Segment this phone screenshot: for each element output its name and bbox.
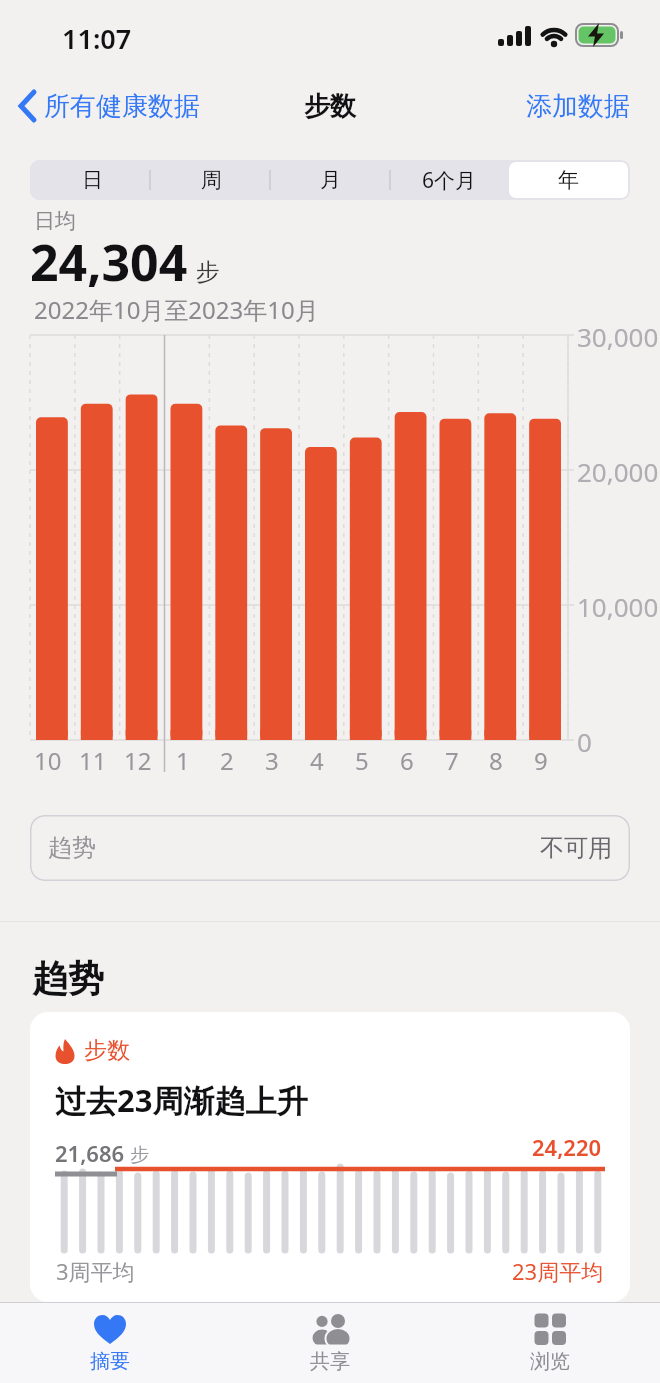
button[interactable]: 年	[509, 162, 628, 198]
staticText: 30,000	[577, 319, 659, 354]
staticText: 日	[82, 167, 103, 193]
staticText: 过去23周渐趋上升	[55, 1079, 308, 1121]
button[interactable]: 6个月	[390, 162, 509, 198]
staticText: 不可用	[540, 833, 612, 863]
staticText: 所有健康数据	[44, 90, 200, 123]
staticText: 12	[124, 744, 152, 777]
staticText: 步	[130, 1143, 149, 1167]
button[interactable]: 添加数据	[526, 90, 630, 123]
staticText: 10,000	[577, 589, 659, 624]
staticText: 1	[176, 744, 190, 777]
staticText: 8	[489, 744, 503, 777]
staticText: 6	[400, 744, 414, 777]
staticText: 21,686	[55, 1138, 125, 1168]
staticText: 2	[220, 744, 234, 777]
staticText: 11	[79, 744, 107, 777]
staticText: 23周平均	[512, 1256, 604, 1286]
staticText: 步数	[84, 1036, 130, 1065]
staticText: 共享	[310, 1349, 350, 1374]
staticText: 24,220	[532, 1132, 602, 1162]
staticText: 日均	[34, 208, 76, 234]
button[interactable]: 摘要	[0, 1303, 220, 1383]
staticText: 6个月	[422, 166, 477, 195]
staticText: 3周平均	[56, 1256, 135, 1286]
staticText: 0	[577, 724, 592, 759]
button[interactable]: 步数	[30, 1012, 630, 1302]
staticText: 10	[34, 744, 62, 777]
staticText: 24,304	[30, 228, 188, 296]
staticText: 年	[558, 167, 579, 193]
staticText: 4	[310, 744, 324, 777]
staticText: 添加数据	[526, 90, 630, 123]
staticText: 11:07	[62, 20, 132, 57]
button[interactable]: 周	[152, 162, 271, 198]
staticText: 2022年10月至2023年10月	[34, 293, 319, 326]
button[interactable]: 共享	[220, 1303, 440, 1383]
button[interactable]: 日	[32, 162, 152, 198]
staticText: 3	[265, 744, 279, 777]
staticText: 周	[201, 167, 222, 193]
staticText: 9	[534, 744, 548, 777]
staticText: 7	[445, 744, 459, 777]
staticText: 5	[355, 744, 369, 777]
staticText: 趋势	[32, 956, 104, 1001]
button[interactable]: 浏览	[440, 1303, 660, 1383]
button[interactable]: 趋势	[30, 815, 630, 881]
staticText: 摘要	[90, 1349, 130, 1374]
button[interactable]: 月	[271, 162, 390, 198]
staticText: 步数	[304, 90, 356, 123]
button[interactable]: 所有健康数据	[14, 88, 200, 124]
staticText: 月	[320, 167, 341, 193]
staticText: 浏览	[530, 1349, 570, 1374]
staticText: 步	[196, 257, 220, 287]
staticText: 趋势	[48, 833, 96, 863]
staticText: 20,000	[577, 454, 659, 489]
